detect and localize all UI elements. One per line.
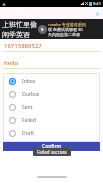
staticText: hello (4, 59, 19, 67)
button[interactable]: Draft (3, 127, 100, 140)
button[interactable]: Sent (3, 101, 100, 114)
staticText: 9:41 (93, 1, 101, 6)
staticText: 联 免费试听课程 30 (48, 27, 83, 32)
button[interactable]: More options (93, 9, 101, 17)
staticText: 16715880527 (4, 42, 42, 50)
staticText: Draft (22, 130, 34, 137)
staticText: Inbox (22, 78, 36, 85)
button[interactable]: Advertisement banner (0, 19, 103, 39)
button[interactable]: Text field 16715880527 (3, 42, 100, 52)
staticText: 上班忙里偷 (2, 20, 37, 29)
staticText: Failed success (37, 149, 67, 155)
staticText: Outbox (22, 91, 40, 98)
staticText: 天内退款第二单课 (48, 32, 80, 37)
button[interactable]: Confirm (3, 142, 100, 151)
button[interactable]: Failed (3, 114, 100, 127)
staticText: Confirm (42, 143, 62, 150)
staticText: Sent (22, 104, 33, 111)
staticText: 闲学英语 (2, 30, 30, 39)
button[interactable]: Inbox (3, 75, 100, 88)
staticText: Failed (22, 117, 36, 124)
button[interactable]: Outbox (3, 88, 100, 101)
staticText: rvoake 专业英语系列 (48, 22, 86, 27)
button[interactable]: Text field hello (3, 59, 100, 69)
